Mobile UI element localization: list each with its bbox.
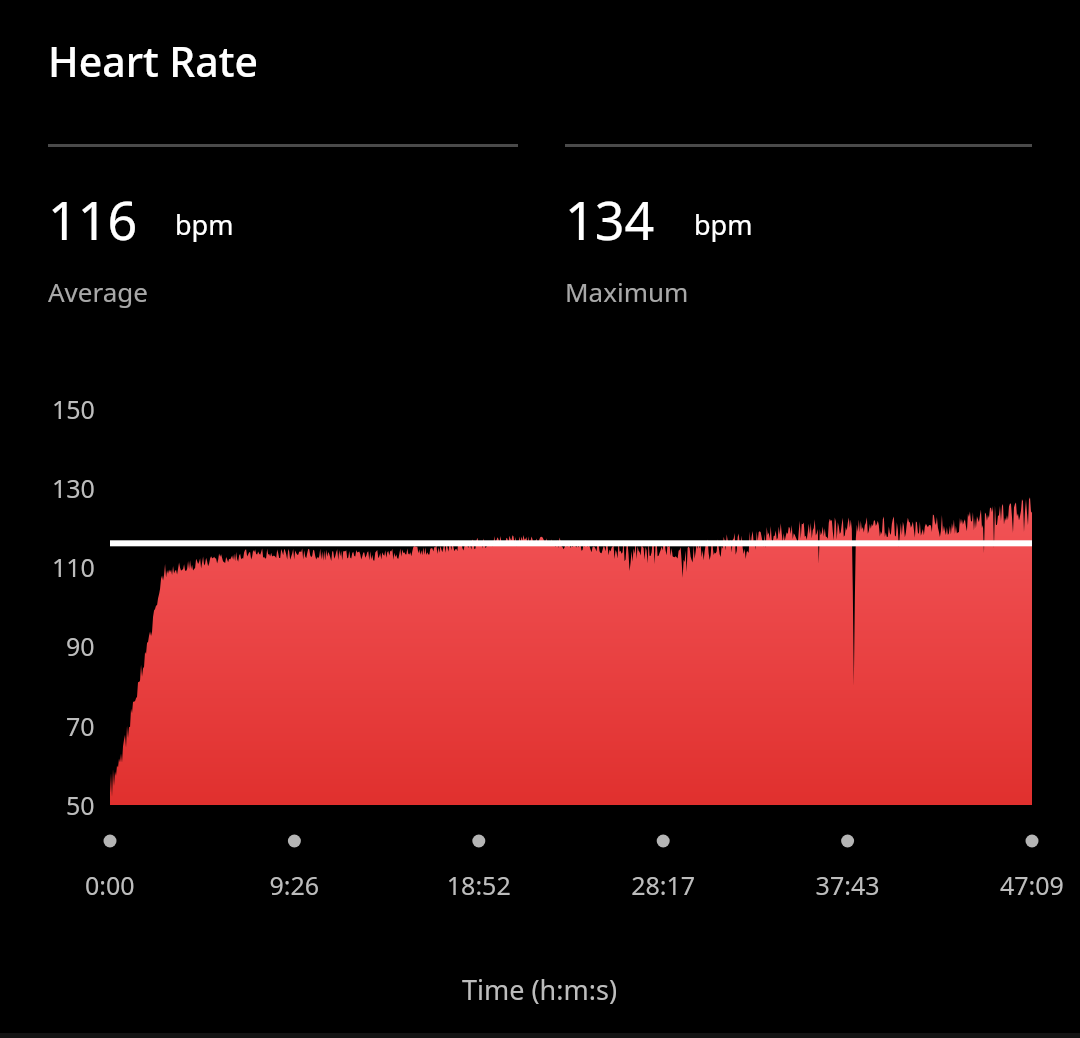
button[interactable]: Heart Rate chart — [0, 0, 1080, 1038]
